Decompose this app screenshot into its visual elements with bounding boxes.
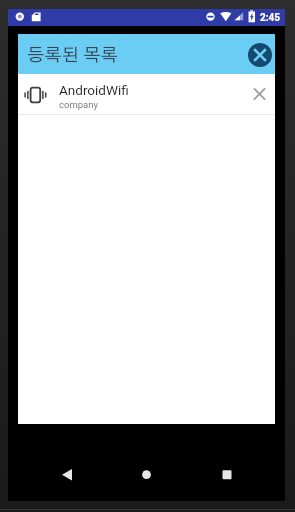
button[interactable]: AndroidWifi [18, 74, 275, 114]
button[interactable] [248, 43, 272, 67]
staticText: AndroidWifi [59, 82, 129, 98]
staticText: company [59, 99, 98, 110]
staticText: 등록된 목록 [27, 47, 118, 65]
staticText: 2:45 [260, 12, 281, 24]
